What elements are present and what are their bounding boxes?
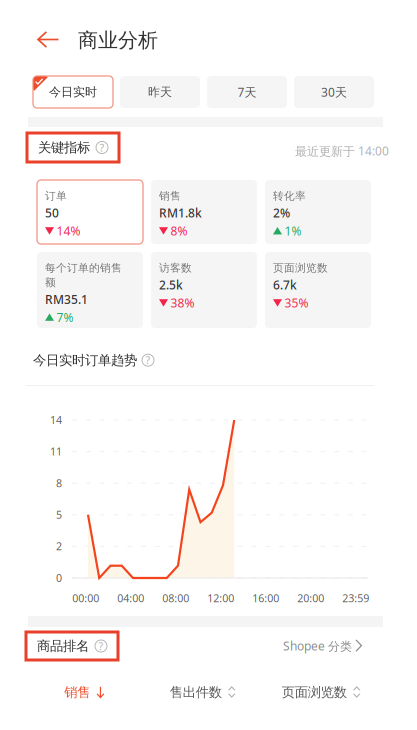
staticText: 23:59 [342,591,369,605]
button[interactable]: 售出件数 [170,684,237,700]
staticText: 2% [273,205,290,221]
button[interactable]: 销售 [64,684,105,700]
button[interactable]: 页面浏览数 [265,252,371,328]
button[interactable]: 访客数 [151,252,257,328]
staticText: 订单 [45,189,67,203]
staticText: 8% [170,223,187,239]
button[interactable]: 每个订单的销售 [37,252,143,328]
staticText: 今日实时订单趋势 [33,352,137,368]
button[interactable]: 今日实时 [33,76,113,108]
staticText: 销售 [64,684,90,700]
staticText: 2 [56,539,62,553]
staticText: 7% [56,309,73,325]
button[interactable]: Shopee 分类 [283,638,363,654]
staticText: 最近更新于 14:00 [295,143,389,159]
staticText: RM35.1 [45,291,88,307]
staticText: 昨天 [148,85,172,99]
button[interactable]: 页面浏览数 [282,684,362,700]
staticText: ? [145,353,150,367]
staticText: 0 [56,571,62,585]
button[interactable]: 昨天 [120,76,200,108]
staticText: 8 [56,476,62,490]
staticText: 商业分析 [78,28,158,53]
staticText: 关键指标 [38,139,90,156]
staticText: 30天 [321,84,347,100]
staticText: Shopee 分类 [283,638,352,654]
staticText: 7天 [237,84,256,100]
button[interactable]: 转化率 [265,180,371,244]
button[interactable]: 30天 [294,76,374,108]
staticText: 访客数 [159,261,192,275]
button[interactable]: Back [37,31,60,48]
staticText: 50 [45,205,59,221]
staticText: 20:00 [297,591,324,605]
staticText: 00:00 [72,591,99,605]
staticText: 1% [284,223,301,239]
staticText: 今日实时 [49,85,97,99]
staticText: 12:00 [207,591,234,605]
staticText: 14 [50,413,62,427]
button[interactable]: 销售 [151,180,257,244]
staticText: 2.5k [159,277,183,293]
staticText: 转化率 [273,189,306,203]
staticText: 每个订单的销售 [45,261,122,275]
staticText: RM1.8k [159,205,202,221]
staticText: 11 [50,444,62,458]
staticText: 16:00 [252,591,279,605]
staticText: 38% [170,295,194,311]
staticText: 额 [45,276,56,289]
staticText: ? [98,639,103,653]
staticText: 页面浏览数 [282,684,347,700]
staticText: 页面浏览数 [273,261,328,275]
staticText: ? [99,140,104,155]
button[interactable]: 7天 [207,76,287,108]
staticText: 售出件数 [170,684,222,700]
staticText: 商品排名 [37,638,89,654]
staticText: 6.7k [273,277,297,293]
staticText: 08:00 [162,591,189,605]
staticText: 35% [284,295,308,311]
staticText: 销售 [159,189,181,203]
staticText: 14% [56,223,80,239]
staticText: 04:00 [117,591,144,605]
staticText: 5 [56,507,62,522]
button[interactable]: 订单 [37,180,143,244]
